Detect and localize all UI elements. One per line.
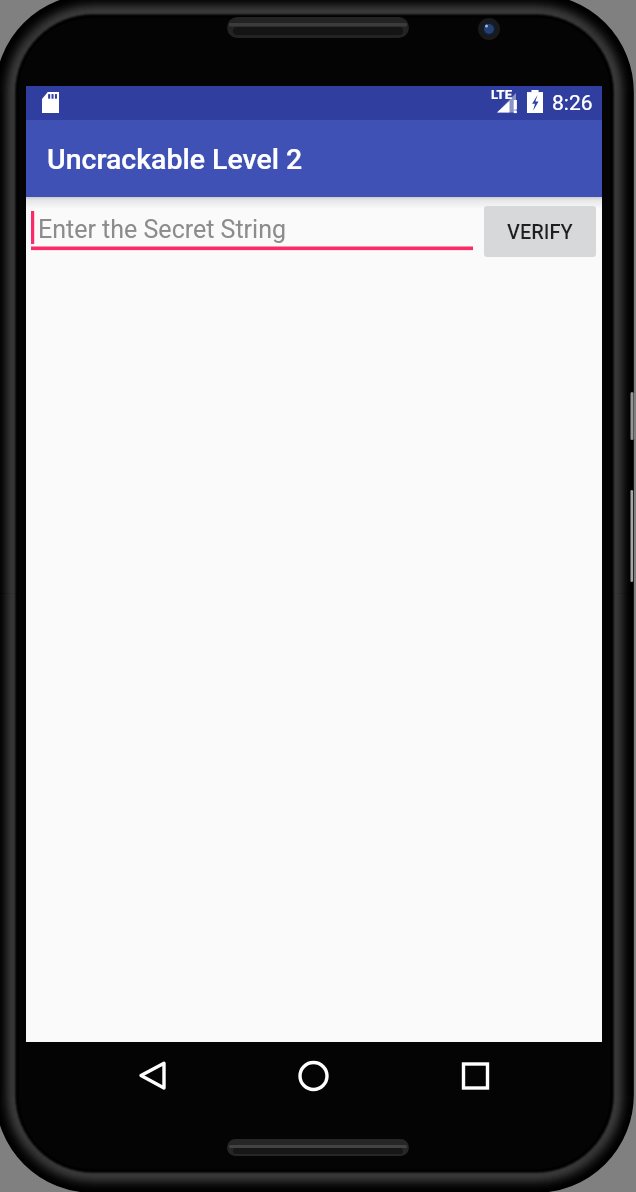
button[interactable]: Back	[122, 1046, 182, 1106]
button[interactable]: Recent apps	[445, 1046, 505, 1106]
staticText: LTE	[491, 87, 512, 102]
staticText: VERIFY	[507, 220, 573, 243]
staticText: 8:26	[552, 91, 593, 116]
button[interactable]: Home	[283, 1046, 343, 1106]
button[interactable]: Enter the Secret String	[31, 205, 473, 265]
staticText: Enter the Secret String	[38, 215, 287, 244]
button[interactable]: VERIFY	[484, 206, 596, 257]
staticText: Uncrackable Level 2	[47, 143, 303, 176]
